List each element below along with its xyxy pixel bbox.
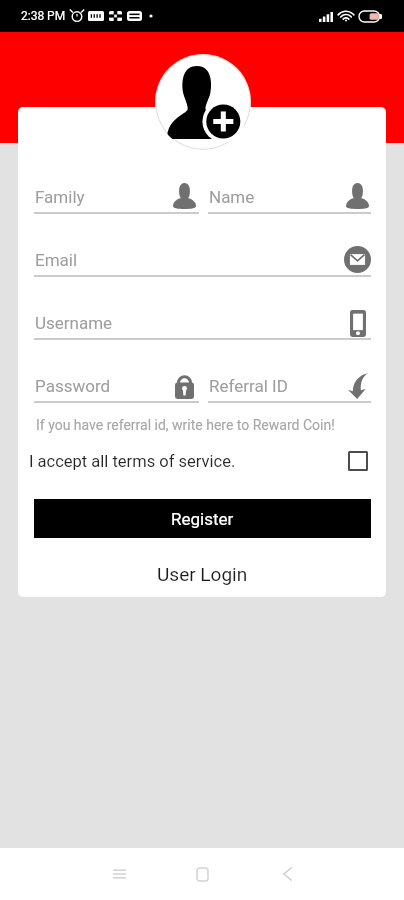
button[interactable]: Email bbox=[34, 243, 371, 277]
staticText: 2:38 PM bbox=[21, 9, 66, 23]
button[interactable]: Name bbox=[208, 180, 371, 214]
staticText: I accept all terms of service. bbox=[29, 452, 236, 471]
button[interactable]: Username bbox=[34, 306, 371, 340]
staticText: Register bbox=[171, 509, 234, 529]
staticText: Family bbox=[35, 187, 85, 207]
button[interactable]: User Login bbox=[34, 556, 371, 592]
button[interactable]: Referral ID bbox=[208, 369, 371, 403]
staticText: Name bbox=[209, 187, 255, 207]
staticText: Email bbox=[35, 250, 78, 270]
staticText: User Login bbox=[157, 563, 248, 585]
button[interactable]: I accept all terms of service. bbox=[29, 446, 368, 475]
staticText: Username bbox=[35, 313, 113, 333]
button[interactable]: Recent apps bbox=[97, 852, 141, 896]
button[interactable]: Add profile photo bbox=[155, 54, 251, 150]
button[interactable]: Password bbox=[34, 369, 199, 403]
button[interactable]: Back bbox=[265, 852, 309, 896]
staticText: Referral ID bbox=[209, 376, 288, 396]
button[interactable]: Register bbox=[34, 499, 371, 538]
button[interactable]: Family bbox=[34, 180, 199, 214]
button[interactable]: Home bbox=[180, 852, 224, 896]
staticText: If you have referral id, write here to R… bbox=[36, 417, 335, 433]
staticText: Password bbox=[35, 376, 111, 396]
